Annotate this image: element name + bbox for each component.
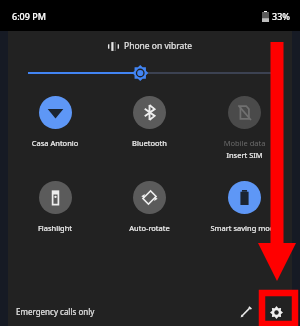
staticText: Casa Antonio [10, 138, 100, 148]
button[interactable]: Edit [235, 301, 257, 323]
staticText: Phone on vibrate [124, 40, 193, 52]
button[interactable]: Brightness [28, 63, 272, 83]
button[interactable]: Flashlight [8, 181, 102, 253]
staticText: Smart saving mode [199, 223, 290, 233]
staticText: Insert SIM [197, 150, 292, 160]
staticText: Bluetooth [104, 138, 195, 148]
button[interactable]: Bluetooth [102, 96, 197, 168]
staticText: Emergency calls only [16, 306, 95, 317]
staticText: Mobile data [199, 138, 290, 148]
staticText: Flashlight [10, 223, 100, 233]
staticText: Auto-rotate [104, 223, 195, 233]
staticText: 33% [272, 10, 290, 22]
button[interactable]: Mobile data [197, 96, 292, 168]
button[interactable]: Settings [265, 301, 287, 323]
button[interactable]: Smart saving mode [197, 181, 292, 253]
button[interactable]: Auto-rotate [102, 181, 197, 253]
staticText: 6:09 PM [12, 10, 46, 22]
button[interactable]: Wi-Fi [8, 96, 102, 168]
